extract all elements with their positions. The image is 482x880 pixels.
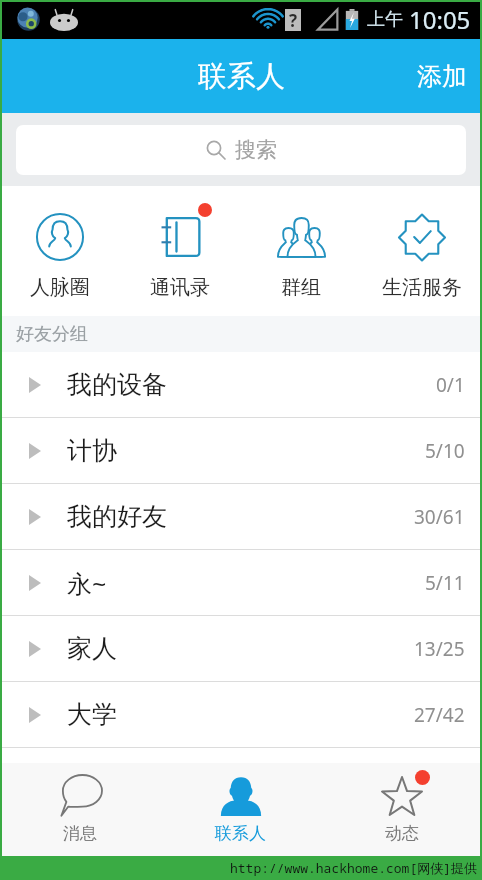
button[interactable]: 消息 — [0, 768, 160, 851]
staticText: 我的设备 — [67, 369, 167, 400]
staticText: 生活服务 — [382, 275, 462, 300]
staticText: 联系人 — [215, 823, 266, 844]
button[interactable]: 计协 — [0, 418, 482, 483]
staticText: 人脉圈 — [30, 275, 90, 300]
button[interactable]: 人脉圈 — [0, 199, 120, 304]
button[interactable]: 动态 — [321, 768, 482, 851]
staticText: 永~ — [67, 566, 107, 600]
staticText: 消息 — [63, 823, 97, 844]
button[interactable]: 搜索 — [16, 125, 466, 175]
staticText: 搜索 — [235, 137, 277, 163]
staticText: 家人 — [67, 633, 117, 664]
button[interactable]: 家人 — [0, 616, 482, 681]
staticText: 我的好友 — [67, 501, 167, 532]
button[interactable]: 联系人 — [160, 768, 321, 851]
button[interactable]: 通讯录 — [120, 199, 240, 304]
staticText: 好友分组 — [16, 323, 88, 346]
staticText: 10:05 — [409, 3, 471, 36]
staticText: 群组 — [281, 275, 321, 300]
staticText: 通讯录 — [150, 275, 210, 300]
staticText: 0/1 — [436, 372, 465, 398]
button[interactable]: 添加 — [397, 39, 482, 113]
staticText: 动态 — [385, 823, 419, 844]
staticText: 5/10 — [425, 438, 465, 464]
staticText: 联系人 — [198, 58, 285, 95]
staticText: http://www.hackhome.com[网侠]提供 — [230, 859, 478, 877]
staticText: 5/11 — [425, 570, 465, 596]
staticText: ? — [289, 9, 298, 31]
button[interactable]: 我的设备 — [0, 352, 482, 417]
button[interactable]: 永~ — [0, 550, 482, 615]
staticText: 30/61 — [414, 504, 465, 530]
staticText: 计协 — [67, 435, 117, 466]
button[interactable]: 大学 — [0, 682, 482, 747]
button[interactable]: 我的好友 — [0, 484, 482, 549]
staticText: 27/42 — [414, 702, 465, 728]
button[interactable]: 群组 — [240, 199, 361, 304]
staticText: 上午 — [367, 8, 403, 31]
button[interactable]: 生活服务 — [361, 199, 482, 304]
staticText: 大学 — [67, 699, 117, 730]
staticText: 添加 — [417, 61, 467, 92]
staticText: 13/25 — [414, 636, 465, 662]
